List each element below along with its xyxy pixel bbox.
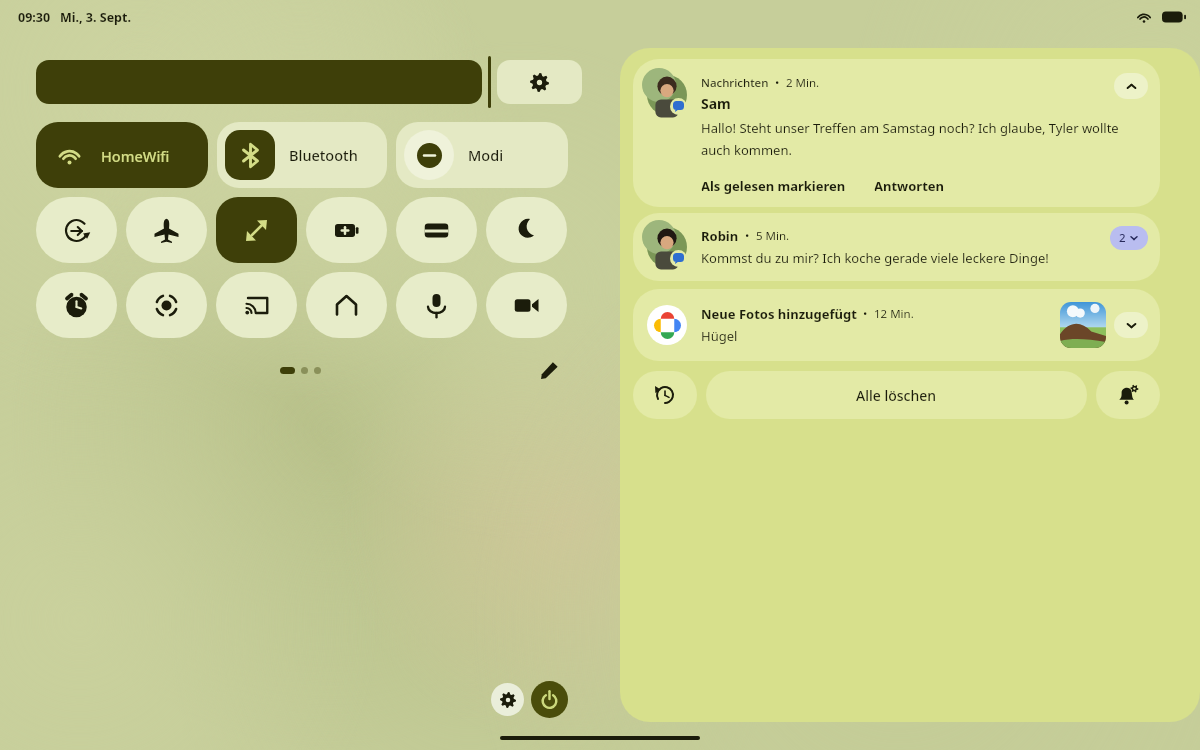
- button[interactable]: Screen record: [126, 272, 207, 338]
- staticText: Neue Fotos hinzugefügt: [701, 305, 857, 323]
- button[interactable]: Edit tiles: [534, 355, 564, 385]
- staticText: •: [769, 75, 786, 91]
- staticText: Mi., 3. Sept.: [60, 9, 131, 26]
- button[interactable]: Nachrichten: [633, 59, 1160, 207]
- button[interactable]: Auto rotate: [216, 197, 297, 263]
- staticText: Robin: [701, 227, 739, 245]
- button[interactable]: HomeWifi: [36, 122, 208, 188]
- button[interactable]: Video: [486, 272, 567, 338]
- staticText: Kommst du zu mir? Ich koche gerade viele…: [701, 249, 1049, 267]
- button[interactable]: Collapse: [1114, 73, 1148, 99]
- staticText: Nachrichten: [701, 75, 769, 91]
- staticText: HomeWifi: [101, 146, 170, 166]
- staticText: •: [857, 306, 874, 322]
- button[interactable]: Neue Fotos hinzugefügt: [633, 289, 1160, 361]
- staticText: Antworten: [874, 177, 945, 195]
- staticText: Alle löschen: [856, 386, 937, 405]
- staticText: 5 Min.: [756, 228, 790, 244]
- staticText: 12 Min.: [874, 306, 914, 322]
- staticText: Hügel: [701, 327, 738, 345]
- button[interactable]: Notification settings: [1096, 371, 1160, 419]
- button[interactable]: Expand: [1114, 312, 1148, 338]
- button[interactable]: History: [633, 371, 697, 419]
- button[interactable]: Microphone: [396, 272, 477, 338]
- staticText: Als gelesen markieren: [701, 177, 846, 195]
- button[interactable]: Sync: [36, 197, 117, 263]
- button[interactable]: Wallet: [396, 197, 477, 263]
- staticText: Hallo! Steht unser Treffen am Samstag no…: [701, 119, 1141, 159]
- button[interactable]: Battery saver: [306, 197, 387, 263]
- button[interactable]: Dark theme: [486, 197, 567, 263]
- button[interactable]: Cast: [216, 272, 297, 338]
- staticText: Modi: [468, 145, 504, 165]
- button[interactable]: Auto brightness: [497, 60, 582, 104]
- button[interactable]: Robin: [633, 213, 1160, 281]
- button[interactable]: Als gelesen markieren: [701, 177, 846, 195]
- button[interactable]: Bluetooth: [217, 122, 387, 188]
- staticText: Bluetooth: [289, 145, 358, 165]
- button[interactable]: Antworten: [874, 177, 945, 195]
- staticText: 09:30: [18, 9, 51, 26]
- button[interactable]: Modi: [396, 122, 568, 188]
- button[interactable]: Airplane mode: [126, 197, 207, 263]
- button[interactable]: Alle löschen: [706, 371, 1087, 419]
- button[interactable]: Settings: [491, 683, 524, 716]
- staticText: 2 Min.: [786, 75, 820, 91]
- staticText: •: [739, 228, 756, 244]
- staticText: Sam: [701, 94, 731, 113]
- button[interactable]: Brightness: [36, 60, 482, 104]
- button[interactable]: Expand group: [1110, 226, 1148, 250]
- staticText: 2: [1119, 230, 1126, 246]
- button[interactable]: Power: [531, 681, 568, 718]
- button[interactable]: Home: [306, 272, 387, 338]
- button[interactable]: Alarm: [36, 272, 117, 338]
